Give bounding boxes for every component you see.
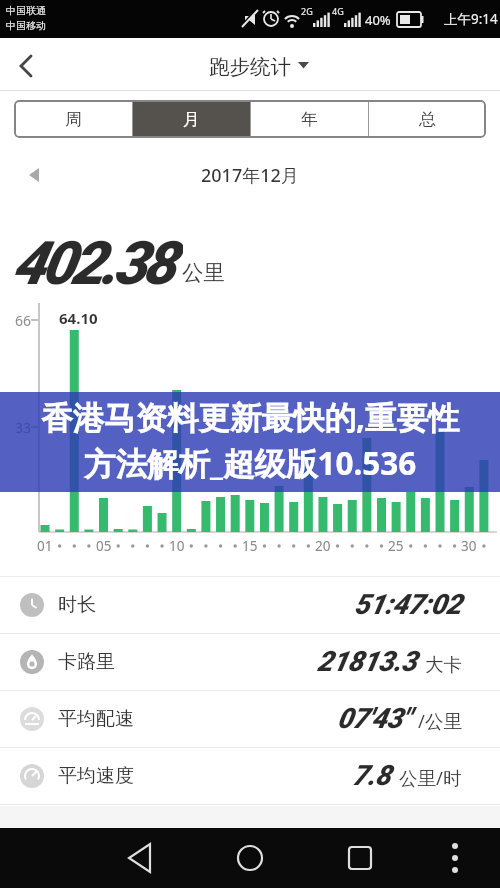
staticText: 方法解析_超级版10.536 (84, 441, 417, 484)
staticText: 51:47:02 (354, 588, 462, 621)
staticText: 时长 (58, 593, 96, 617)
staticText: 中国联通 (6, 4, 46, 17)
button[interactable] (10, 48, 46, 84)
staticText: 10 (169, 537, 185, 555)
staticText: 01 (37, 537, 53, 555)
button[interactable]: 年 (250, 100, 368, 138)
staticText: 07'43" (337, 702, 410, 735)
button[interactable]: 周 (14, 100, 132, 138)
staticText: 中国移动 (6, 19, 46, 32)
staticText: 上午9:14 (444, 10, 498, 28)
staticText: 20 (315, 537, 331, 555)
staticText: 66 (15, 311, 32, 328)
staticText: 05 (96, 537, 112, 555)
staticText: 4G (332, 5, 344, 16)
staticText: 公里/时 (399, 765, 462, 790)
staticText: 2017年12月 (201, 163, 299, 188)
button[interactable] (232, 840, 268, 876)
staticText: 30 (461, 537, 477, 555)
staticText: 33 (15, 418, 32, 435)
staticText: 平均配速 (58, 707, 134, 731)
staticText: /公里 (418, 708, 462, 733)
staticText: 7.8 (352, 759, 391, 792)
staticText: 25 (388, 537, 404, 555)
staticText: 40% (365, 11, 391, 28)
staticText: 周 (65, 109, 82, 130)
staticText: 平均速度 (58, 764, 134, 788)
staticText: 21813.3 (317, 645, 417, 678)
staticText: 64.10 (59, 308, 98, 326)
button[interactable]: 月 (132, 100, 250, 138)
staticText: 大卡 (425, 653, 462, 676)
button[interactable] (440, 840, 470, 876)
button[interactable] (0, 747, 500, 804)
button[interactable]: 总 (368, 100, 486, 138)
staticText: 公里 (182, 259, 225, 286)
button[interactable] (22, 162, 48, 188)
staticText: 卡路里 (58, 650, 115, 674)
staticText: 402.38 (12, 228, 183, 294)
staticText: 跑步统计 (209, 54, 291, 80)
button[interactable] (124, 840, 160, 876)
button[interactable] (0, 392, 500, 492)
button[interactable] (0, 690, 500, 747)
button[interactable] (0, 576, 500, 633)
staticText: 香港马资料更新最快的,重要性 (41, 395, 460, 438)
staticText: 总 (419, 109, 436, 130)
button[interactable] (342, 840, 378, 876)
staticText: 2G (301, 5, 313, 16)
button[interactable] (0, 633, 500, 690)
staticText: 15 (242, 537, 258, 555)
staticText: 年 (301, 109, 318, 130)
staticText: 月 (183, 109, 200, 130)
button[interactable]: 跑步统计 (150, 50, 350, 84)
